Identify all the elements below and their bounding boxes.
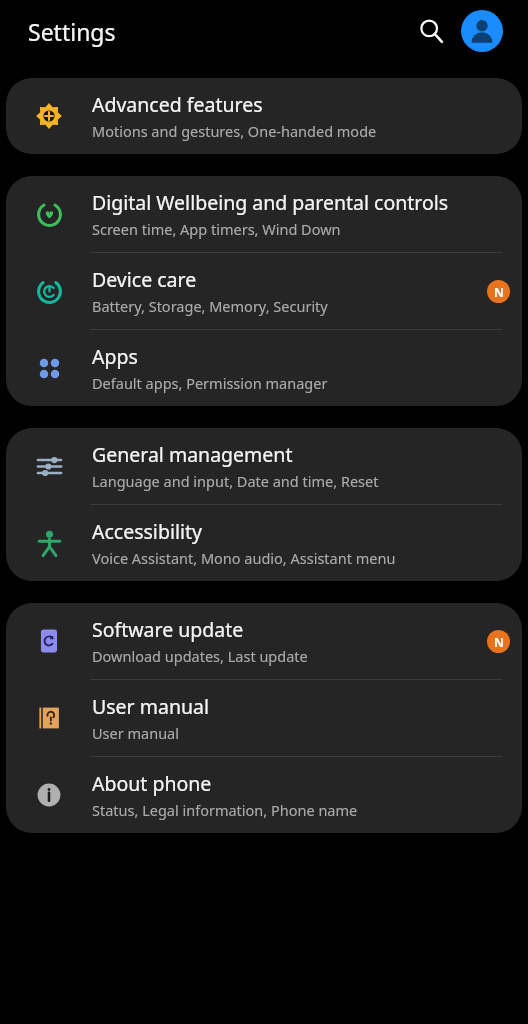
button[interactable]: Device care	[6, 253, 522, 329]
staticText: Voice Assistant, Mono audio, Assistant m…	[92, 548, 396, 568]
staticText: N	[494, 634, 504, 650]
staticText: N	[494, 284, 504, 300]
button[interactable]: Digital Wellbeing and parental controls	[6, 176, 522, 252]
staticText: General management	[92, 441, 293, 468]
staticText: Download updates, Last update	[92, 646, 308, 666]
staticText: Advanced features	[92, 91, 263, 118]
button[interactable]: Software update	[6, 603, 522, 679]
staticText: About phone	[92, 770, 212, 797]
staticText: Settings	[28, 16, 116, 47]
button[interactable]: About phone	[6, 757, 522, 833]
button[interactable]: Advanced features	[6, 78, 522, 154]
button[interactable]: General management	[6, 428, 522, 504]
staticText: Apps	[92, 343, 138, 370]
button[interactable]: Search	[408, 8, 454, 54]
staticText: User manual	[92, 723, 179, 743]
staticText: Default apps, Permission manager	[92, 373, 328, 393]
staticText: Language and input, Date and time, Reset	[92, 471, 379, 491]
staticText: Screen time, App timers, Wind Down	[92, 219, 341, 239]
staticText: Battery, Storage, Memory, Security	[92, 296, 328, 316]
staticText: Status, Legal information, Phone name	[92, 800, 358, 820]
staticText: User manual	[92, 693, 209, 720]
button[interactable]: Accessibility	[6, 505, 522, 581]
button[interactable]: Apps	[6, 330, 522, 406]
staticText: Accessibility	[92, 518, 202, 545]
staticText: Motions and gestures, One-handed mode	[92, 121, 377, 141]
button[interactable]: Account	[459, 8, 505, 54]
staticText: Software update	[92, 616, 244, 643]
staticText: Device care	[92, 266, 197, 293]
button[interactable]: User manual	[6, 680, 522, 756]
staticText: Digital Wellbeing and parental controls	[92, 189, 449, 216]
